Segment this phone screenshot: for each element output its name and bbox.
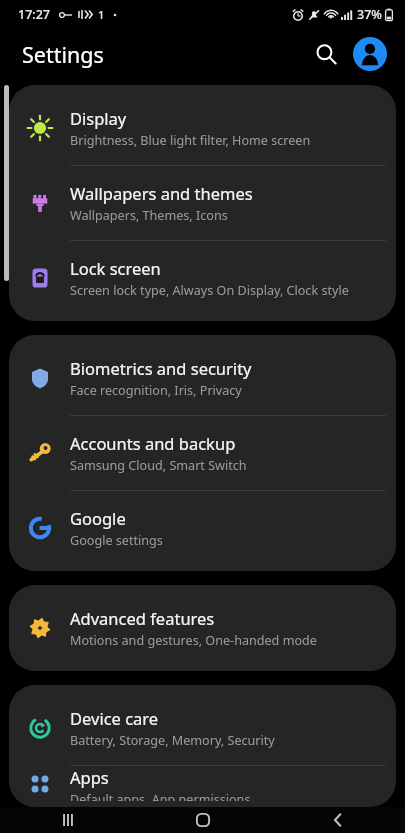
button[interactable]: Accounts and backup (9, 416, 396, 490)
staticText: Battery, Storage, Memory, Security (70, 732, 275, 749)
button[interactable]: Google (9, 491, 396, 565)
staticText: Settings (22, 40, 104, 69)
staticText: Google (70, 507, 126, 529)
staticText: Lock screen (70, 257, 161, 279)
button[interactable]: Advanced features (9, 591, 396, 665)
button[interactable]: Back (270, 807, 405, 833)
staticText: Accounts and backup (70, 432, 236, 454)
staticText: Wallpapers and themes (70, 182, 253, 204)
staticText: Biometrics and security (70, 357, 252, 379)
button[interactable]: Home (135, 807, 270, 833)
staticText: Google settings (70, 532, 163, 549)
staticText: Advanced features (70, 607, 215, 629)
staticText: Default apps, App permissions (70, 791, 251, 801)
staticText: Samsung Cloud, Smart Switch (70, 457, 247, 474)
button[interactable]: Account (348, 32, 392, 76)
button[interactable]: Wallpapers and themes (9, 166, 396, 240)
staticText: Brightness, Blue light filter, Home scre… (70, 132, 311, 149)
button[interactable]: Search (304, 32, 348, 76)
staticText: 37% (357, 6, 382, 23)
button[interactable]: Display (9, 91, 396, 165)
staticText: Motions and gestures, One-handed mode (70, 632, 317, 649)
button[interactable]: Apps (9, 766, 396, 801)
staticText: Face recognition, Iris, Privacy (70, 382, 242, 399)
staticText: Wallpapers, Themes, Icons (70, 207, 228, 224)
staticText: 1 (98, 7, 105, 22)
staticText: Device care (70, 707, 159, 729)
staticText: 17:27 (18, 6, 51, 23)
staticText: Display (70, 107, 127, 129)
button[interactable]: Device care (9, 691, 396, 765)
button[interactable]: Recent apps (0, 807, 135, 833)
button[interactable]: Lock screen (9, 241, 396, 315)
staticText: Apps (70, 766, 109, 788)
button[interactable]: Biometrics and security (9, 341, 396, 415)
staticText: Screen lock type, Always On Display, Clo… (70, 282, 349, 299)
